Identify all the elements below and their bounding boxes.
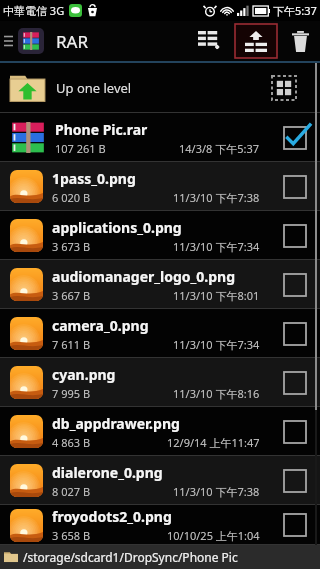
button[interactable]: Select all [268, 72, 300, 104]
button[interactable]: Add to archive [188, 21, 232, 61]
staticText: 8 027 B [52, 484, 91, 499]
button[interactable]: 1pass_0.png [0, 162, 320, 211]
staticText: 11/3/10 下午7:38 [173, 190, 260, 205]
staticText: camera_0.png [52, 316, 149, 335]
staticText: 11/3/10 下午7:38 [173, 484, 260, 499]
staticText: cyan.png [52, 365, 116, 384]
button[interactable]: dialerone_0.png [0, 456, 320, 505]
button[interactable]: db_appdrawer.png [0, 407, 320, 456]
button[interactable]: froyodots2_0.png [0, 505, 320, 545]
staticText: 14/3/8 下午5:37 [179, 141, 260, 156]
button[interactable]: Select dialerone_0.png [278, 464, 312, 498]
staticText: 10/10/25 上午1:04 [167, 528, 260, 543]
button[interactable]: Select froyodots2_0.png [278, 508, 312, 542]
staticText: audiomanager_logo_0.png [52, 267, 236, 286]
staticText: db_appdrawer.png [52, 414, 180, 433]
button[interactable]: Select audiomanager_logo_0.png [278, 268, 312, 302]
staticText: 1pass_0.png [52, 169, 136, 188]
button[interactable]: Delete [280, 21, 320, 61]
staticText: /storage/sdcard1/DropSync/Phone Pic [23, 549, 238, 565]
staticText: 11/3/10 下午7:34 [173, 239, 260, 254]
staticText: Up one level [56, 79, 132, 97]
staticText: froyodots2_0.png [52, 507, 172, 526]
staticText: applications_0.png [52, 218, 182, 237]
staticText: 11/3/10 下午8:16 [173, 386, 260, 401]
button[interactable]: Select applications_0.png [278, 219, 312, 253]
staticText: Phone Pic.rar [55, 120, 148, 139]
staticText: 下午5:37 [273, 3, 317, 18]
button[interactable]: Navigate up [0, 21, 48, 61]
staticText: 3 667 B [52, 288, 91, 303]
button[interactable]: cyan.png [0, 358, 320, 407]
staticText: 11/3/10 下午8:01 [173, 288, 260, 303]
button[interactable]: Extract [232, 21, 280, 61]
button[interactable]: Select db_appdrawer.png [278, 415, 312, 449]
staticText: 3 673 B [52, 239, 91, 254]
button[interactable]: Select cyan.png [278, 366, 312, 400]
button[interactable]: Select Phone Pic.rar [278, 121, 312, 155]
button[interactable]: Select 1pass_0.png [278, 170, 312, 204]
staticText: 107 261 B [55, 141, 106, 156]
button[interactable]: Up one level [0, 63, 320, 113]
staticText: 4 863 B [52, 435, 91, 450]
staticText: 7 995 B [52, 386, 91, 401]
staticText: 11/3/10 下午7:34 [173, 337, 260, 352]
staticText: 7 611 B [52, 337, 91, 352]
button[interactable]: audiomanager_logo_0.png [0, 260, 320, 309]
button[interactable]: Select camera_0.png [278, 317, 312, 351]
staticText: 6 020 B [52, 190, 91, 205]
staticText: 中華電信 3G [3, 3, 65, 18]
staticText: 12/9/14 上午11:47 [167, 435, 260, 450]
button[interactable]: /storage/sdcard1/DropSync/Phone Pic [0, 545, 320, 569]
staticText: dialerone_0.png [52, 463, 163, 482]
button[interactable]: applications_0.png [0, 211, 320, 260]
button[interactable]: Phone Pic.rar [0, 113, 320, 162]
staticText: 3 658 B [52, 528, 91, 543]
button[interactable]: camera_0.png [0, 309, 320, 358]
staticText: RAR [56, 30, 89, 53]
